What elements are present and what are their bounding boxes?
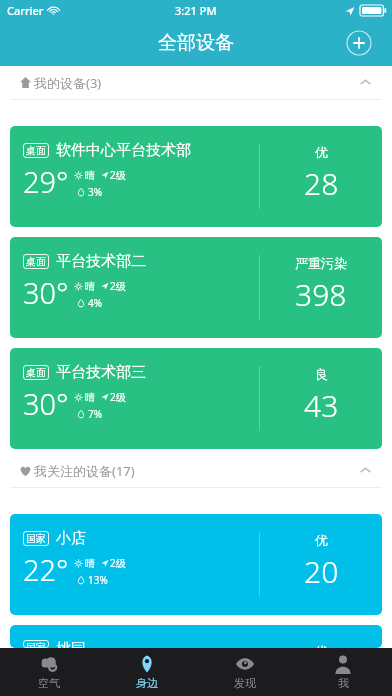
staticText: 20	[304, 551, 339, 592]
staticText: 2级	[110, 556, 126, 570]
staticText: 2级	[110, 390, 126, 404]
button[interactable]: 国家	[10, 514, 382, 615]
staticText: 晴	[85, 280, 95, 293]
staticText: 国家	[26, 641, 46, 647]
staticText: 严重污染	[295, 255, 347, 271]
staticText: 国家	[26, 532, 46, 545]
staticText: 晴	[85, 391, 95, 404]
staticText: 30°	[23, 273, 69, 312]
staticText: 4%	[88, 296, 103, 310]
staticText: 小店	[56, 529, 86, 548]
button[interactable]: 桌面	[10, 237, 382, 338]
staticText: 全部设备	[158, 31, 234, 55]
staticText: 2级	[110, 279, 126, 293]
staticText: 3%	[88, 185, 103, 199]
staticText: 平台技术部三	[56, 363, 146, 382]
button[interactable]: 桌面	[10, 348, 382, 449]
staticText: Carrier	[7, 3, 44, 18]
staticText: 桌面	[26, 366, 46, 379]
staticText: 13%	[88, 573, 108, 587]
staticText: 我关注的设备(17)	[34, 462, 135, 480]
staticText: 身边	[136, 676, 158, 690]
staticText: 30°	[23, 384, 69, 423]
button[interactable]: 我的设备(3)	[0, 66, 392, 99]
staticText: 398	[295, 274, 347, 315]
button[interactable]: 发现	[196, 648, 294, 696]
staticText: 2级	[110, 168, 126, 182]
staticText: 桌面	[26, 144, 46, 157]
staticText: 软件中心平台技术部	[56, 141, 191, 160]
staticText: 我的设备(3)	[34, 74, 102, 92]
staticText: 晴	[85, 169, 95, 182]
staticText: 7%	[88, 407, 103, 421]
staticText: 29°	[23, 162, 69, 201]
staticText: 22°	[23, 550, 69, 589]
staticText: 桃园	[56, 640, 86, 648]
staticText: 空气	[38, 676, 60, 690]
staticText: 发现	[234, 676, 256, 690]
button[interactable]: 桌面	[10, 126, 382, 227]
button[interactable]: 我	[294, 648, 392, 696]
staticText: 43	[304, 385, 339, 426]
staticText: 桌面	[26, 255, 46, 268]
staticText: 我	[338, 676, 349, 690]
button[interactable]: 空气	[0, 648, 98, 696]
staticText: 优	[315, 144, 328, 160]
staticText: 平台技术部二	[56, 252, 146, 271]
staticText: 晴	[85, 557, 95, 570]
button[interactable]: Add device	[346, 30, 372, 56]
staticText: 3:21 PM	[175, 3, 217, 18]
button[interactable]: 国家	[10, 625, 382, 648]
staticText: 28	[304, 163, 339, 204]
button[interactable]: 身边	[98, 648, 196, 696]
staticText: 优	[315, 532, 328, 548]
staticText: 良	[315, 366, 328, 382]
button[interactable]: 我关注的设备(17)	[0, 454, 392, 487]
staticText: 优	[315, 643, 328, 648]
